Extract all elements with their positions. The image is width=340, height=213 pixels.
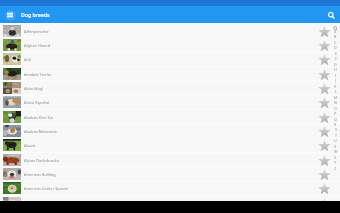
staticText: Q: [334, 117, 337, 122]
staticText: American Bulldog: [24, 172, 317, 177]
staticText: B: [334, 34, 337, 39]
staticText: Alano Español: [24, 100, 317, 105]
button[interactable]: Afghan Hound: [0, 38, 340, 52]
staticText: T: [335, 133, 337, 138]
staticText: Z: [334, 166, 337, 171]
staticText: U: [334, 138, 337, 143]
button[interactable]: Favourite: [317, 110, 331, 124]
staticText: D: [334, 45, 337, 50]
staticText: M: [334, 95, 338, 100]
button[interactable]: American Bulldog: [0, 167, 340, 181]
staticText: J: [335, 78, 336, 83]
button[interactable]: Favourite: [317, 95, 331, 109]
button[interactable]: Affenpinscher: [0, 24, 340, 38]
staticText: Aidi: [24, 57, 317, 62]
button[interactable]: Open navigation drawer: [2, 7, 18, 23]
button[interactable]: Favourite: [317, 52, 331, 66]
staticText: A: [334, 29, 337, 34]
button[interactable]: American Cocker Spaniel: [0, 181, 340, 195]
staticText: Dog breeds: [21, 11, 50, 18]
staticText: Affenpinscher: [24, 29, 317, 34]
button[interactable]: Airedale Terrier: [0, 67, 340, 81]
button[interactable]: Favourite: [317, 67, 331, 81]
staticText: I: [335, 73, 337, 78]
button[interactable]: Alpine Dachsbracke: [0, 153, 340, 167]
staticText: Afghan Hound: [24, 43, 317, 48]
staticText: G: [334, 62, 337, 67]
button[interactable]: Alphabet index: [331, 23, 340, 201]
staticText: Airedale Terrier: [24, 72, 317, 77]
staticText: C: [334, 40, 337, 45]
button[interactable]: Favourite: [317, 181, 331, 195]
staticText: Alpine Dachsbracke: [24, 158, 317, 163]
staticText: H: [334, 67, 337, 72]
button[interactable]: Alaunt: [0, 138, 340, 152]
button[interactable]: Favourite: [317, 24, 331, 38]
staticText: O: [334, 106, 337, 111]
button[interactable]: Favourite: [317, 138, 331, 152]
staticText: E: [335, 51, 337, 56]
staticText: V: [334, 144, 337, 149]
staticText: X: [334, 155, 337, 160]
staticText: P: [334, 111, 337, 116]
staticText: F: [335, 56, 337, 61]
button[interactable]: Search: [324, 8, 338, 22]
button[interactable]: Aidi: [0, 52, 340, 66]
staticText: American Cocker Spaniel: [24, 186, 317, 191]
staticText: S: [335, 127, 337, 132]
staticText: R: [334, 122, 337, 127]
button[interactable]: Favourite: [317, 167, 331, 181]
button[interactable]: Favourite: [317, 124, 331, 138]
staticText: Akita (dog): [24, 86, 317, 91]
staticText: Alaskan Malamute: [24, 129, 317, 134]
button[interactable]: Alaskan Malamute: [0, 124, 340, 138]
staticText: L: [335, 89, 337, 94]
button[interactable]: Alano Español: [0, 95, 340, 109]
button[interactable]: Favourite: [317, 153, 331, 167]
staticText: Y: [334, 160, 337, 165]
staticText: N: [334, 100, 337, 105]
staticText: Alaunt: [24, 143, 317, 148]
button[interactable]: Favourite: [317, 81, 331, 95]
staticText: W: [334, 149, 338, 154]
staticText: Alaskan Klee Kai: [24, 115, 317, 120]
button[interactable]: Alaskan Klee Kai: [0, 110, 340, 124]
button[interactable]: Favourite: [317, 38, 331, 52]
button[interactable]: American Eskimo Dog: [0, 196, 340, 210]
button[interactable]: Akita (dog): [0, 81, 340, 95]
staticText: K: [334, 84, 337, 89]
button[interactable]: Favourite: [317, 196, 331, 210]
